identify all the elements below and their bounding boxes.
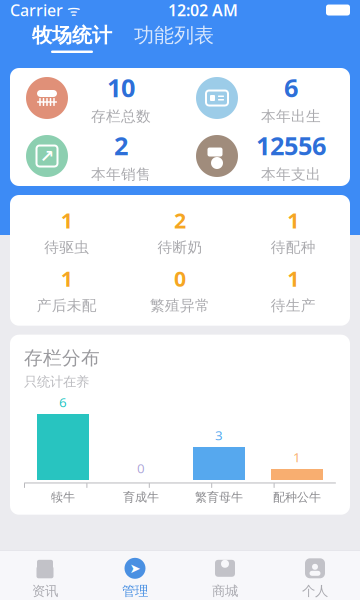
- staticText: 本年出生: [261, 107, 321, 125]
- staticText: 10: [107, 71, 135, 104]
- button[interactable]: ➤: [90, 556, 180, 600]
- staticText: 本年支出: [261, 165, 321, 183]
- button[interactable]: ↗: [10, 129, 180, 183]
- staticText: 配种公牛: [273, 490, 321, 505]
- staticText: ↗: [39, 146, 54, 166]
- staticText: 待生产: [271, 297, 316, 315]
- button[interactable]: 0: [123, 264, 237, 315]
- button[interactable]: 商城: [180, 556, 270, 600]
- staticText: ➤: [129, 561, 140, 576]
- staticText: 0: [137, 459, 145, 477]
- staticText: 2: [174, 206, 186, 234]
- staticText: Carrier: [10, 0, 63, 21]
- button[interactable]: 资讯: [0, 556, 90, 600]
- staticText: 只统计在养: [24, 374, 89, 390]
- staticText: 1: [61, 206, 73, 234]
- staticText: 存栏总数: [91, 107, 151, 125]
- staticText: 6: [284, 71, 298, 104]
- staticText: 商城: [212, 583, 238, 599]
- staticText: 牧场统计: [32, 23, 112, 48]
- staticText: 0: [174, 264, 186, 293]
- staticText: 12556: [256, 129, 326, 162]
- staticText: 育成牛: [123, 490, 159, 505]
- staticText: 管理: [122, 583, 148, 599]
- button[interactable]: 个人: [270, 556, 360, 600]
- staticText: 3: [215, 426, 223, 444]
- button[interactable]: 1: [237, 264, 350, 315]
- staticText: 6: [59, 393, 67, 411]
- staticText: ᯤ: [63, 0, 80, 20]
- staticText: 本年销售: [91, 165, 151, 183]
- button[interactable]: 功能列表: [132, 23, 216, 53]
- staticText: 1: [287, 206, 299, 234]
- staticText: 待断奶: [157, 238, 202, 256]
- staticText: 资讯: [32, 583, 58, 599]
- button[interactable]: 2: [123, 206, 237, 256]
- staticText: 1: [293, 448, 301, 466]
- button[interactable]: 1: [10, 206, 123, 256]
- staticText: 待配种: [271, 238, 316, 256]
- staticText: 繁育母牛: [195, 490, 243, 505]
- staticText: 个人: [302, 583, 328, 599]
- staticText: 12:02 AM: [168, 0, 238, 21]
- staticText: 繁殖异常: [150, 297, 210, 315]
- staticText: 产后未配: [37, 297, 97, 315]
- button[interactable]: 10: [10, 71, 180, 125]
- button[interactable]: 1: [10, 264, 123, 315]
- staticText: 1: [287, 264, 299, 293]
- button[interactable]: 12556: [180, 129, 350, 183]
- staticText: 犊牛: [51, 490, 75, 505]
- staticText: 存栏分布: [24, 347, 100, 370]
- button[interactable]: 6: [180, 71, 350, 125]
- staticText: 待驱虫: [44, 238, 89, 256]
- button[interactable]: 1: [237, 206, 350, 256]
- button[interactable]: 牧场统计: [30, 23, 114, 53]
- staticText: 功能列表: [134, 23, 214, 48]
- staticText: 1: [61, 264, 73, 293]
- staticText: 2: [114, 129, 128, 162]
